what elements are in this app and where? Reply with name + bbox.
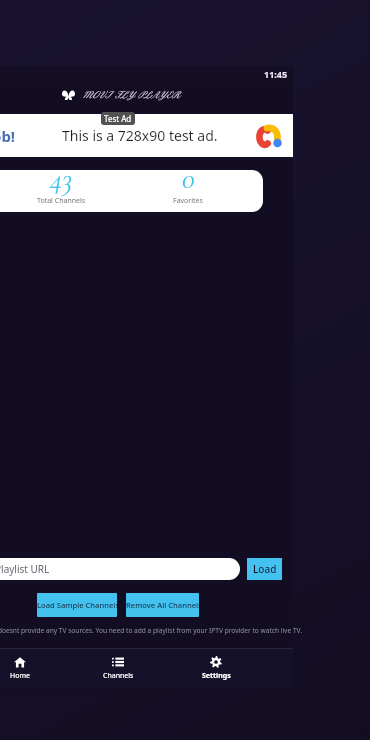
staticText: AdMob! [0,126,16,146]
other: Channels [112,656,124,668]
staticText: Playlist URL [0,562,50,576]
other: Home [14,656,26,668]
button[interactable]: Remove All Channels [126,593,199,617]
staticText: 11:45 [264,68,288,80]
button[interactable]: Load [247,558,282,580]
staticText: Test Ad [104,113,132,124]
other: Settings [210,656,222,668]
staticText: This app doesnt provide any TV sources. … [0,626,302,635]
button[interactable]: Home [0,648,52,688]
staticText: Channels [103,671,134,681]
staticText: This is a 728x90 test ad. [62,126,218,145]
staticText: Load [253,562,277,576]
staticText: Remove All Channels [126,600,199,610]
button[interactable]: Load Sample Channels [37,593,117,617]
staticText: 43 [50,170,73,196]
button[interactable]: Channels [86,648,150,688]
staticText: 0 [182,170,195,196]
button[interactable]: Settings [184,648,248,688]
staticText: Favorites [173,196,203,206]
staticText: Settings [202,671,231,681]
button[interactable]: Playlist URL [0,558,240,580]
staticText: Load Sample Channels [37,600,117,610]
staticText: Home [10,671,30,681]
staticText: MOVI FLY PLAYER [83,90,181,101]
staticText: Total Channels [37,196,86,206]
